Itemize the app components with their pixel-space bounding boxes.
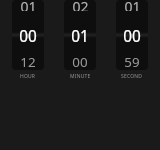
staticText: 01 [20, 0, 37, 11]
staticText: SECOND [121, 73, 143, 80]
staticText: 01 [71, 26, 89, 47]
staticText: 59 [124, 53, 140, 67]
staticText: 01 [124, 0, 141, 11]
staticText: 12 [20, 53, 36, 67]
staticText: HOUR [20, 73, 36, 80]
staticText: 00 [19, 26, 37, 47]
staticText: 02 [72, 0, 89, 11]
button[interactable]: 01 [116, 0, 148, 70]
staticText: 00 [123, 26, 141, 47]
staticText: 00 [72, 53, 88, 67]
button[interactable]: 02 [64, 0, 96, 70]
button[interactable]: 01 [12, 0, 44, 70]
staticText: MINUTE [70, 73, 91, 80]
